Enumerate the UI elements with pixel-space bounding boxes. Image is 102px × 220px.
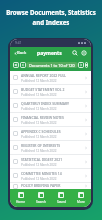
button[interactable]: REGISTER OF INTERESTS — [10, 141, 91, 154]
button[interactable]: APPENDIX C SCHEDULES — [10, 127, 91, 140]
staticText: Documents 1 to 10 of 120 — [29, 63, 75, 68]
button[interactable]: First page — [13, 62, 19, 68]
button[interactable]: Last page — [85, 62, 88, 68]
staticText: Search — [36, 200, 47, 204]
button[interactable]: BUDGET STATEMENT VOL 2 — [10, 85, 91, 98]
button[interactable]: Search — [72, 50, 78, 56]
button[interactable]: Search — [31, 189, 51, 207]
button[interactable]: POLICY BRIEFING PAPER — [10, 183, 91, 189]
staticText: Published 12 March 2022 — [21, 149, 57, 153]
button[interactable]: Home — [10, 189, 31, 207]
staticText: COMMITTEE MINUTES 14 — [21, 171, 62, 176]
staticText: APPENDIX C SCHEDULES — [21, 129, 61, 134]
staticText: Published 12 March 2022 — [21, 135, 57, 139]
staticText: Home — [16, 200, 26, 204]
staticText: Published 12 March 2022 — [21, 79, 57, 83]
button[interactable]: QUARTERLY INDEX SUMMARY — [10, 99, 91, 112]
button[interactable]: Next page — [78, 62, 84, 68]
staticText: Published 12 March 2022 — [21, 107, 57, 111]
staticText: POLICY BRIEFING PAPER — [21, 183, 61, 188]
staticText: ANNUAL REPORT 2022 FULL — [21, 73, 67, 78]
button[interactable]: Previous page — [20, 62, 26, 68]
button[interactable]: Saved — [51, 189, 71, 207]
button[interactable]: ANNUAL REPORT 2022 FULL — [10, 71, 91, 84]
staticText: Published 12 March 2022 — [21, 177, 57, 181]
button[interactable]: FINANCIAL REVIEW NOTES — [10, 113, 91, 126]
staticText: Browse Documents, Statistics and Indexes — [2, 8, 100, 26]
button[interactable]: More — [71, 189, 91, 207]
staticText: Published 12 March 2022 — [21, 121, 57, 125]
staticText: Published 12 March 2022 — [21, 163, 57, 167]
staticText: Published 12 March 2022 — [21, 93, 57, 97]
button[interactable]: Settings — [81, 50, 87, 56]
staticText: BUDGET STATEMENT VOL 2 — [21, 87, 65, 92]
staticText: FINANCIAL REVIEW NOTES — [21, 115, 64, 120]
staticText: QUARTERLY INDEX SUMMARY — [21, 101, 70, 106]
button[interactable]: Documents 1 to 10 of 120 — [26, 62, 78, 68]
staticText: REGISTER OF INTERESTS — [21, 143, 61, 148]
staticText: Back — [17, 50, 27, 56]
button[interactable]: COMMITTEE MINUTES 14 — [10, 169, 91, 182]
staticText: STATISTICAL DIGEST 2021 — [21, 157, 63, 162]
staticText: 9:41 — [15, 41, 22, 45]
button[interactable]: Back — [14, 50, 27, 56]
staticText: More — [77, 200, 85, 204]
staticText: Saved — [57, 200, 66, 204]
button[interactable]: STATISTICAL DIGEST 2021 — [10, 155, 91, 168]
staticText: payments — [37, 50, 62, 57]
